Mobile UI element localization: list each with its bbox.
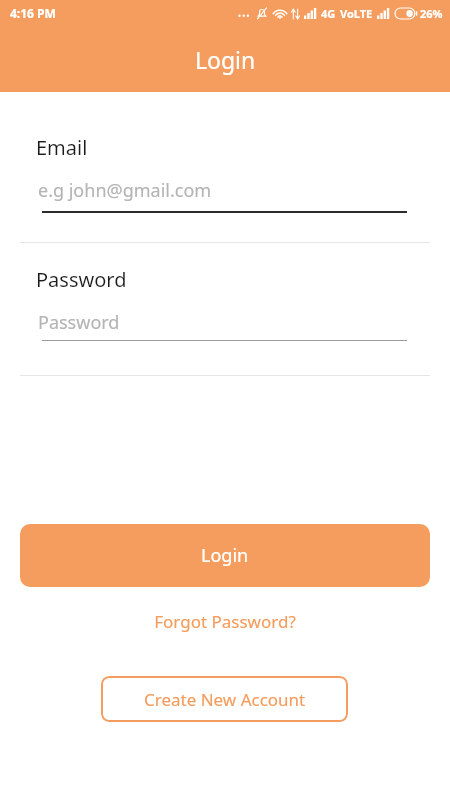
staticText: Login — [201, 543, 249, 568]
staticText: 4:16 PM — [10, 5, 56, 21]
button[interactable]: Login — [20, 524, 430, 587]
staticText: Password — [38, 310, 120, 335]
staticText: e.g john@gmail.com — [38, 178, 212, 203]
staticText: 4G — [321, 6, 336, 21]
staticText: Password — [36, 266, 127, 293]
button[interactable]: Forgot Password? — [0, 605, 450, 637]
staticText: Create New Account — [144, 688, 306, 711]
staticText: Login — [195, 44, 256, 75]
staticText: 26% — [420, 6, 443, 21]
button[interactable]: Password — [36, 310, 414, 350]
button[interactable]: Create New Account — [101, 676, 348, 722]
staticText: Email — [36, 134, 88, 161]
staticText: Forgot Password? — [154, 610, 296, 633]
staticText: VoLTE — [340, 6, 373, 21]
button[interactable]: e.g john@gmail.com — [36, 178, 414, 220]
